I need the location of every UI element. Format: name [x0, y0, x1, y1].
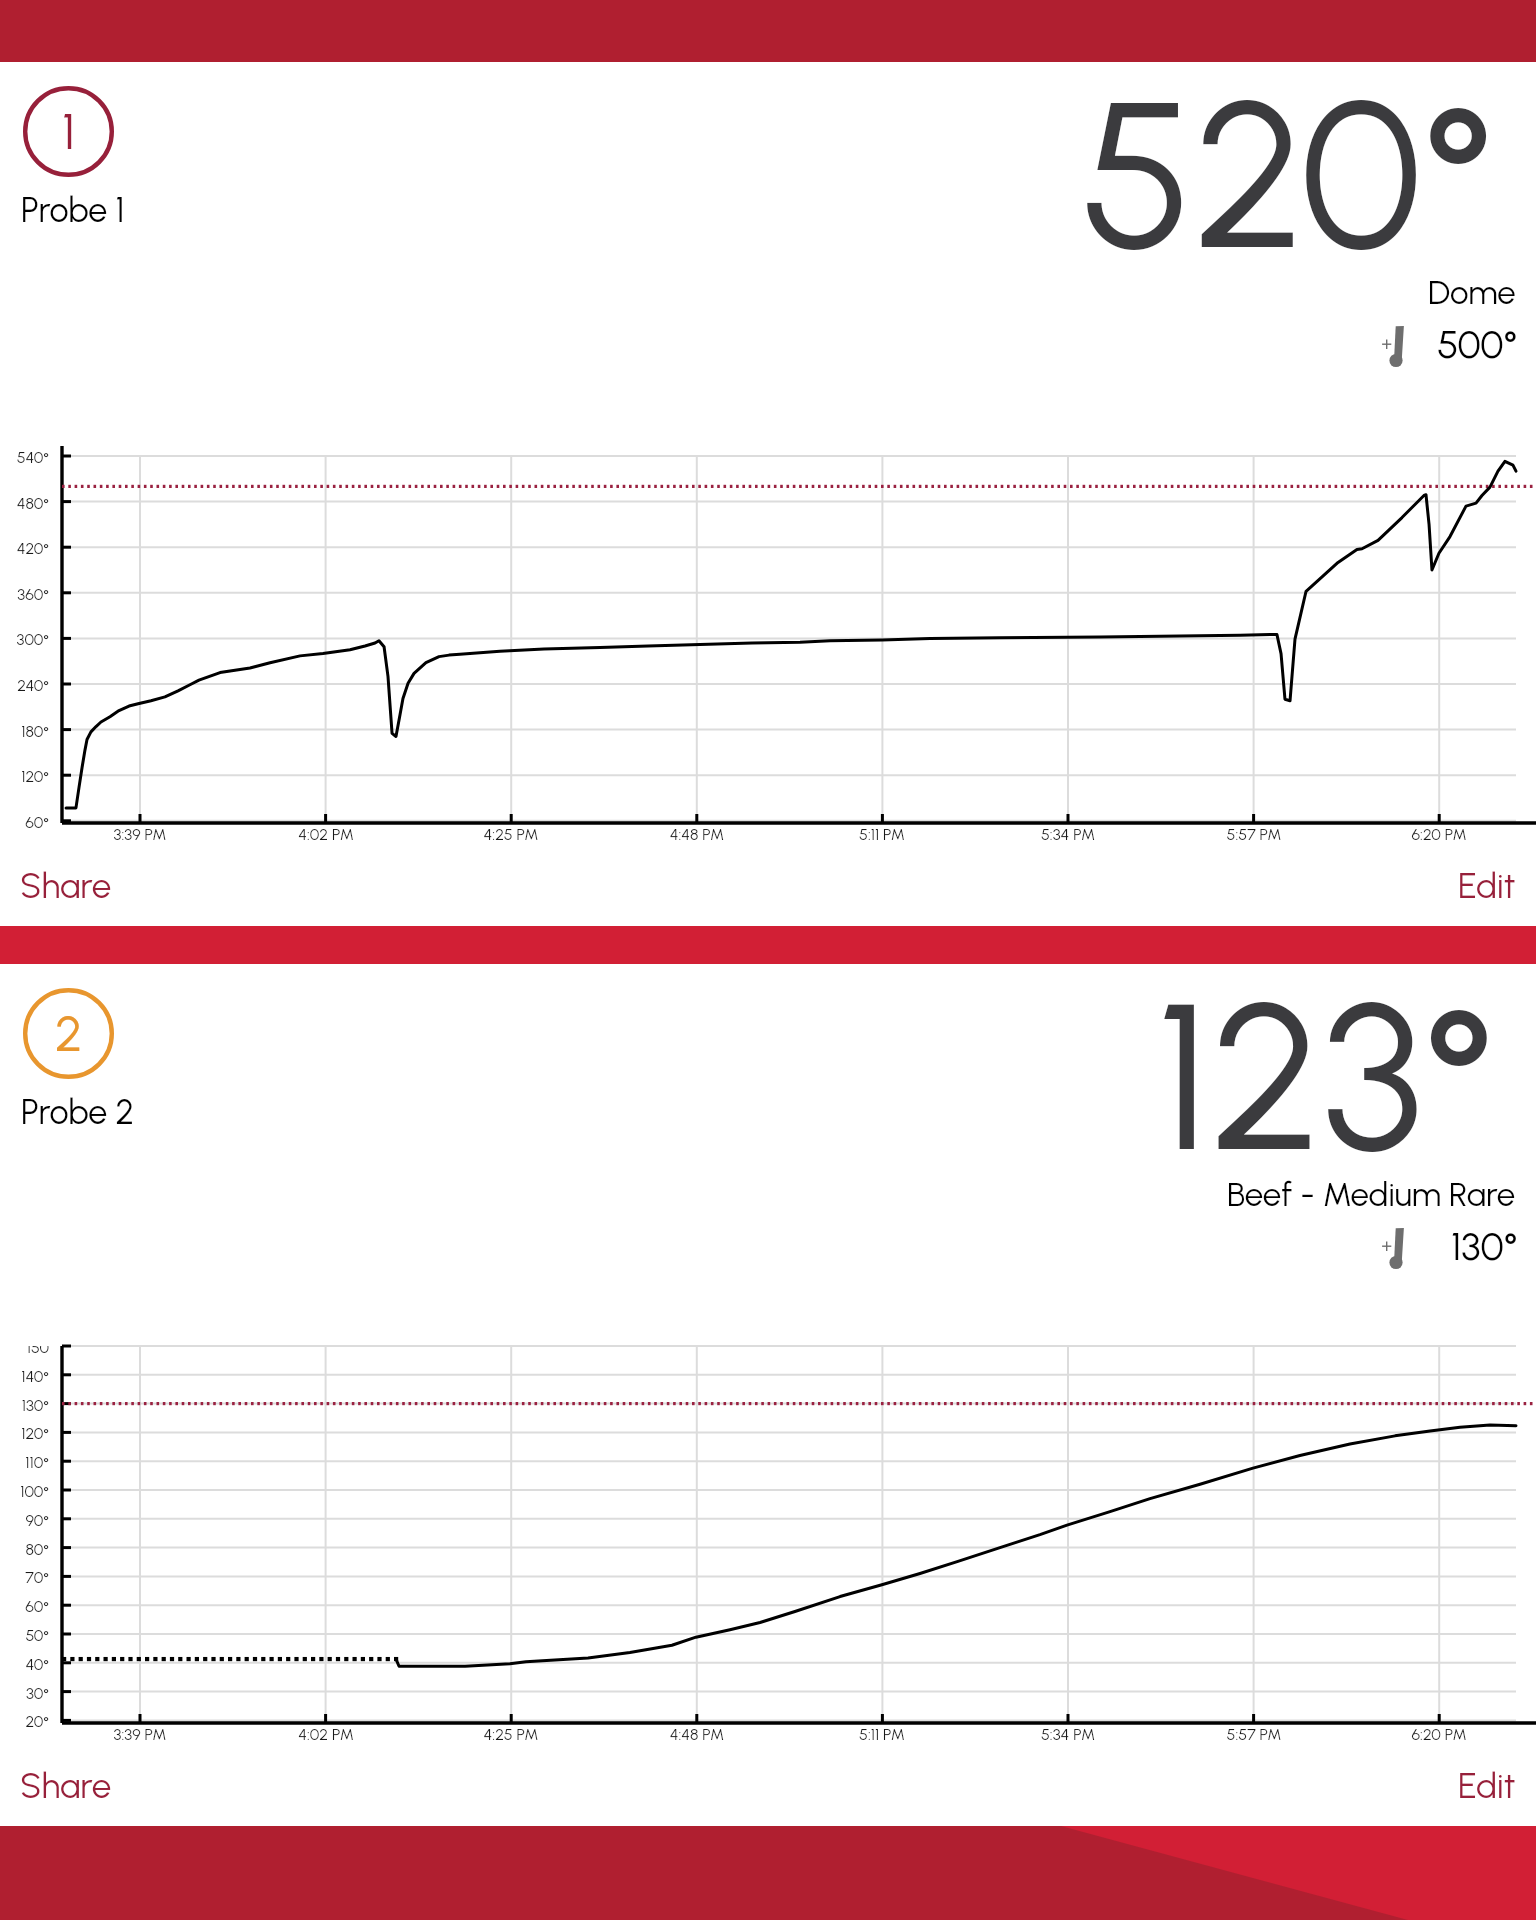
staticText: 5:57 PM: [1184, 825, 1324, 844]
staticText: 5:34 PM: [998, 1725, 1138, 1744]
staticText: 120°: [21, 1424, 49, 1443]
staticText: 300°: [16, 630, 49, 649]
staticText: 4:25 PM: [441, 1725, 581, 1744]
staticText: 4:48 PM: [627, 1725, 767, 1744]
button[interactable]: Share: [0, 1763, 128, 1809]
staticText: 520°: [1080, 52, 1495, 298]
staticText: 420°: [16, 539, 49, 558]
staticText: 150: [26, 1346, 49, 1357]
staticText: 5:34 PM: [998, 825, 1138, 844]
staticText: 3:39 PM: [70, 825, 210, 844]
button[interactable]: Target temperature: [1382, 326, 1405, 368]
staticText: 5:57 PM: [1184, 1725, 1324, 1744]
staticText: 5:11 PM: [812, 825, 952, 844]
staticText: 90°: [25, 1511, 49, 1530]
staticText: 60°: [25, 1597, 49, 1616]
staticText: 40°: [25, 1655, 49, 1674]
staticText: Dome: [1428, 273, 1516, 313]
staticText: 70°: [25, 1568, 49, 1587]
staticText: 6:20 PM: [1369, 825, 1509, 844]
staticText: 240°: [17, 676, 49, 695]
staticText: 4:25 PM: [441, 825, 581, 844]
staticText: 180°: [21, 722, 49, 741]
staticText: 130°: [1451, 1223, 1518, 1270]
staticText: 6:20 PM: [1369, 1725, 1509, 1744]
staticText: 120°: [21, 767, 49, 786]
button[interactable]: Edit: [1442, 1763, 1536, 1809]
staticText: 4:02 PM: [256, 1725, 396, 1744]
staticText: 4:02 PM: [256, 825, 396, 844]
staticText: Share: [20, 1765, 112, 1807]
staticText: 500°: [1437, 321, 1518, 368]
staticText: 5:11 PM: [812, 1725, 952, 1744]
button[interactable]: Probe 1: [23, 86, 114, 177]
staticText: 123°: [1156, 954, 1495, 1200]
staticText: 80°: [25, 1540, 49, 1559]
staticText: 480°: [16, 494, 49, 513]
staticText: 100°: [20, 1482, 49, 1501]
staticText: Share: [20, 865, 112, 907]
staticText: 360°: [17, 585, 49, 604]
staticText: 50°: [25, 1626, 49, 1645]
staticText: 2: [55, 1003, 83, 1063]
staticText: 20°: [25, 1712, 49, 1731]
staticText: 3:39 PM: [70, 1725, 210, 1744]
button[interactable]: Probe 2: [23, 988, 114, 1079]
staticText: 110°: [25, 1453, 49, 1472]
staticText: Probe 1: [21, 190, 125, 231]
staticText: Probe 2: [21, 1092, 134, 1133]
staticText: 4:48 PM: [627, 825, 767, 844]
button[interactable]: Target temperature: [1382, 1228, 1405, 1270]
staticText: 140°: [21, 1367, 49, 1386]
staticText: 30°: [25, 1684, 49, 1703]
staticText: 1: [62, 101, 76, 161]
staticText: Edit: [1458, 865, 1516, 907]
staticText: 60°: [25, 813, 49, 832]
staticText: Beef - Medium Rare: [1227, 1175, 1516, 1215]
staticText: 130°: [21, 1396, 49, 1415]
staticText: 540°: [16, 448, 49, 467]
button[interactable]: Share: [0, 863, 128, 909]
button[interactable]: Edit: [1442, 863, 1536, 909]
staticText: Edit: [1458, 1765, 1516, 1807]
